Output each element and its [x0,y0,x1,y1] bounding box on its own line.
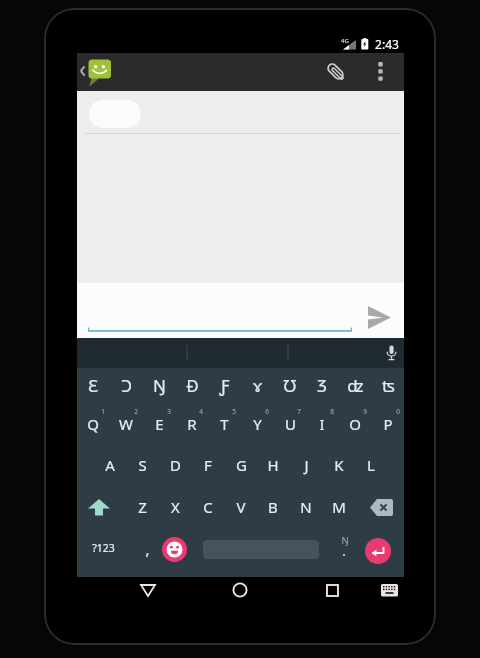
staticText: . [342,542,346,560]
button[interactable] [366,53,394,91]
staticText: V [236,497,246,517]
staticText: E [155,414,164,434]
staticText: M [332,497,346,517]
button[interactable]: O [335,409,375,439]
staticText: Ʒ [317,374,327,397]
button[interactable]: F [188,450,228,480]
button[interactable]: Z [122,492,162,522]
staticText: 2 [134,407,138,416]
button[interactable]: Ƒ [204,370,244,400]
button[interactable]: , [127,534,167,564]
staticText: Ŋ [341,534,349,547]
button[interactable]: S [122,450,162,480]
staticText: L [367,455,375,475]
staticText: 3 [167,407,171,416]
button[interactable]: M [319,492,359,522]
button[interactable]: Ŋ [139,370,179,400]
staticText: 4G [341,37,349,45]
staticText: ʦ [382,374,395,397]
staticText: 0 [396,407,400,416]
button[interactable]: K [319,450,359,480]
button[interactable] [366,492,396,522]
button[interactable]: D [155,450,195,480]
staticText: K [334,455,344,475]
staticText: Y [253,414,262,434]
button[interactable]: I [302,409,342,439]
button[interactable]: Đ [172,370,212,400]
staticText: 5 [232,407,236,416]
button[interactable]: T [204,409,244,439]
staticText: S [138,455,147,475]
button[interactable]: W [106,409,146,439]
staticText: H [267,455,279,475]
button[interactable]: A [90,450,130,480]
button[interactable] [162,537,187,562]
button[interactable] [133,576,163,604]
button[interactable]: R [172,409,212,439]
staticText: U [285,414,296,434]
staticText: Ɛ [88,374,98,397]
button[interactable] [374,576,404,604]
button[interactable]: E [139,409,179,439]
button[interactable]: ?123 [83,533,123,563]
button[interactable] [365,538,391,564]
button[interactable]: Ɛ [73,370,113,400]
button[interactable]: N [286,492,326,522]
staticText: 9 [363,407,367,416]
staticText: ʣ [347,374,364,397]
button[interactable]: C [188,492,228,522]
staticText: ɤ [253,374,262,397]
staticText: A [105,455,115,475]
button[interactable] [84,492,114,522]
staticText: 8 [330,407,334,416]
button[interactable]: L [351,450,391,480]
button[interactable] [78,55,116,90]
button[interactable] [317,53,355,91]
staticText: P [383,414,393,434]
staticText: N [300,497,312,517]
button[interactable]: V [221,492,261,522]
button[interactable]: ʣ [335,370,375,400]
button[interactable]: J [286,450,326,480]
button[interactable]: Ɔ [106,370,146,400]
button[interactable] [362,300,396,334]
staticText: B [268,497,278,517]
button[interactable] [378,340,404,366]
staticText: C [203,497,213,517]
button[interactable]: Q [73,409,113,439]
staticText: R [187,414,197,434]
staticText: Ƒ [219,374,230,397]
staticText: 1 [101,407,105,416]
staticText: G [236,455,247,475]
button[interactable]: . [324,536,364,566]
button[interactable]: Ʒ [302,370,342,400]
button[interactable]: U [270,409,310,439]
staticText: Đ [186,374,199,397]
button[interactable]: Y [237,409,277,439]
button[interactable]: ɤ [237,370,277,400]
button[interactable]: X [155,492,195,522]
button[interactable] [77,283,404,338]
staticText: T [220,414,229,434]
button[interactable]: H [253,450,293,480]
button[interactable]: B [253,492,293,522]
staticText: Ŋ [153,374,166,397]
staticText: Ɔ [121,374,132,397]
staticText: Ʊ [283,374,297,397]
staticText: J [304,455,309,475]
staticText: W [119,414,133,434]
staticText: 7 [297,407,301,416]
staticText: 6 [265,407,269,416]
staticText: Z [138,497,147,517]
button[interactable] [225,576,255,604]
button[interactable]: P [368,409,408,439]
button[interactable]: Ʊ [270,370,310,400]
button[interactable] [317,576,347,604]
button[interactable]: G [221,450,261,480]
staticText: X [171,497,180,517]
staticText: I [319,414,325,434]
staticText: Q [87,414,99,434]
button[interactable]: ʦ [368,370,408,400]
staticText: 2:43 [375,36,399,52]
